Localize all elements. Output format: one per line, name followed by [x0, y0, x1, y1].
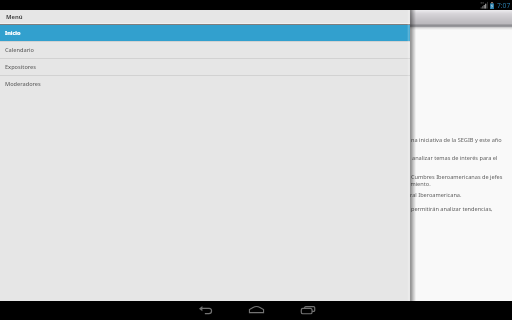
button[interactable]: Home [242, 300, 270, 319]
button[interactable]: Calendario [0, 42, 410, 58]
button[interactable]: Recent apps [294, 300, 322, 319]
staticText: imiento. [409, 180, 431, 188]
staticText: na iniciativa de la SEGIB y este año [411, 136, 502, 144]
staticText: Cumbres Iberoamericanas de jefes [411, 173, 503, 181]
staticText: Inicio [5, 29, 21, 37]
staticText: 7:07 [497, 1, 511, 10]
other: Battery [490, 2, 494, 9]
staticText: Moderadores [5, 80, 41, 88]
staticText: ral Iberoamericana. [410, 191, 462, 199]
button[interactable]: Moderadores [0, 76, 410, 92]
staticText: analizar temas de interés para el [412, 154, 498, 162]
button[interactable]: Inicio [0, 25, 410, 41]
staticText: Expositores [5, 63, 37, 71]
button[interactable]: Back [191, 300, 219, 319]
staticText: Menú [6, 13, 23, 21]
other: Signal strength [479, 1, 488, 10]
staticText: Calendario [5, 46, 34, 54]
button[interactable]: Expositores [0, 59, 410, 75]
staticText: permitirán analizar tendencias, [411, 205, 493, 213]
